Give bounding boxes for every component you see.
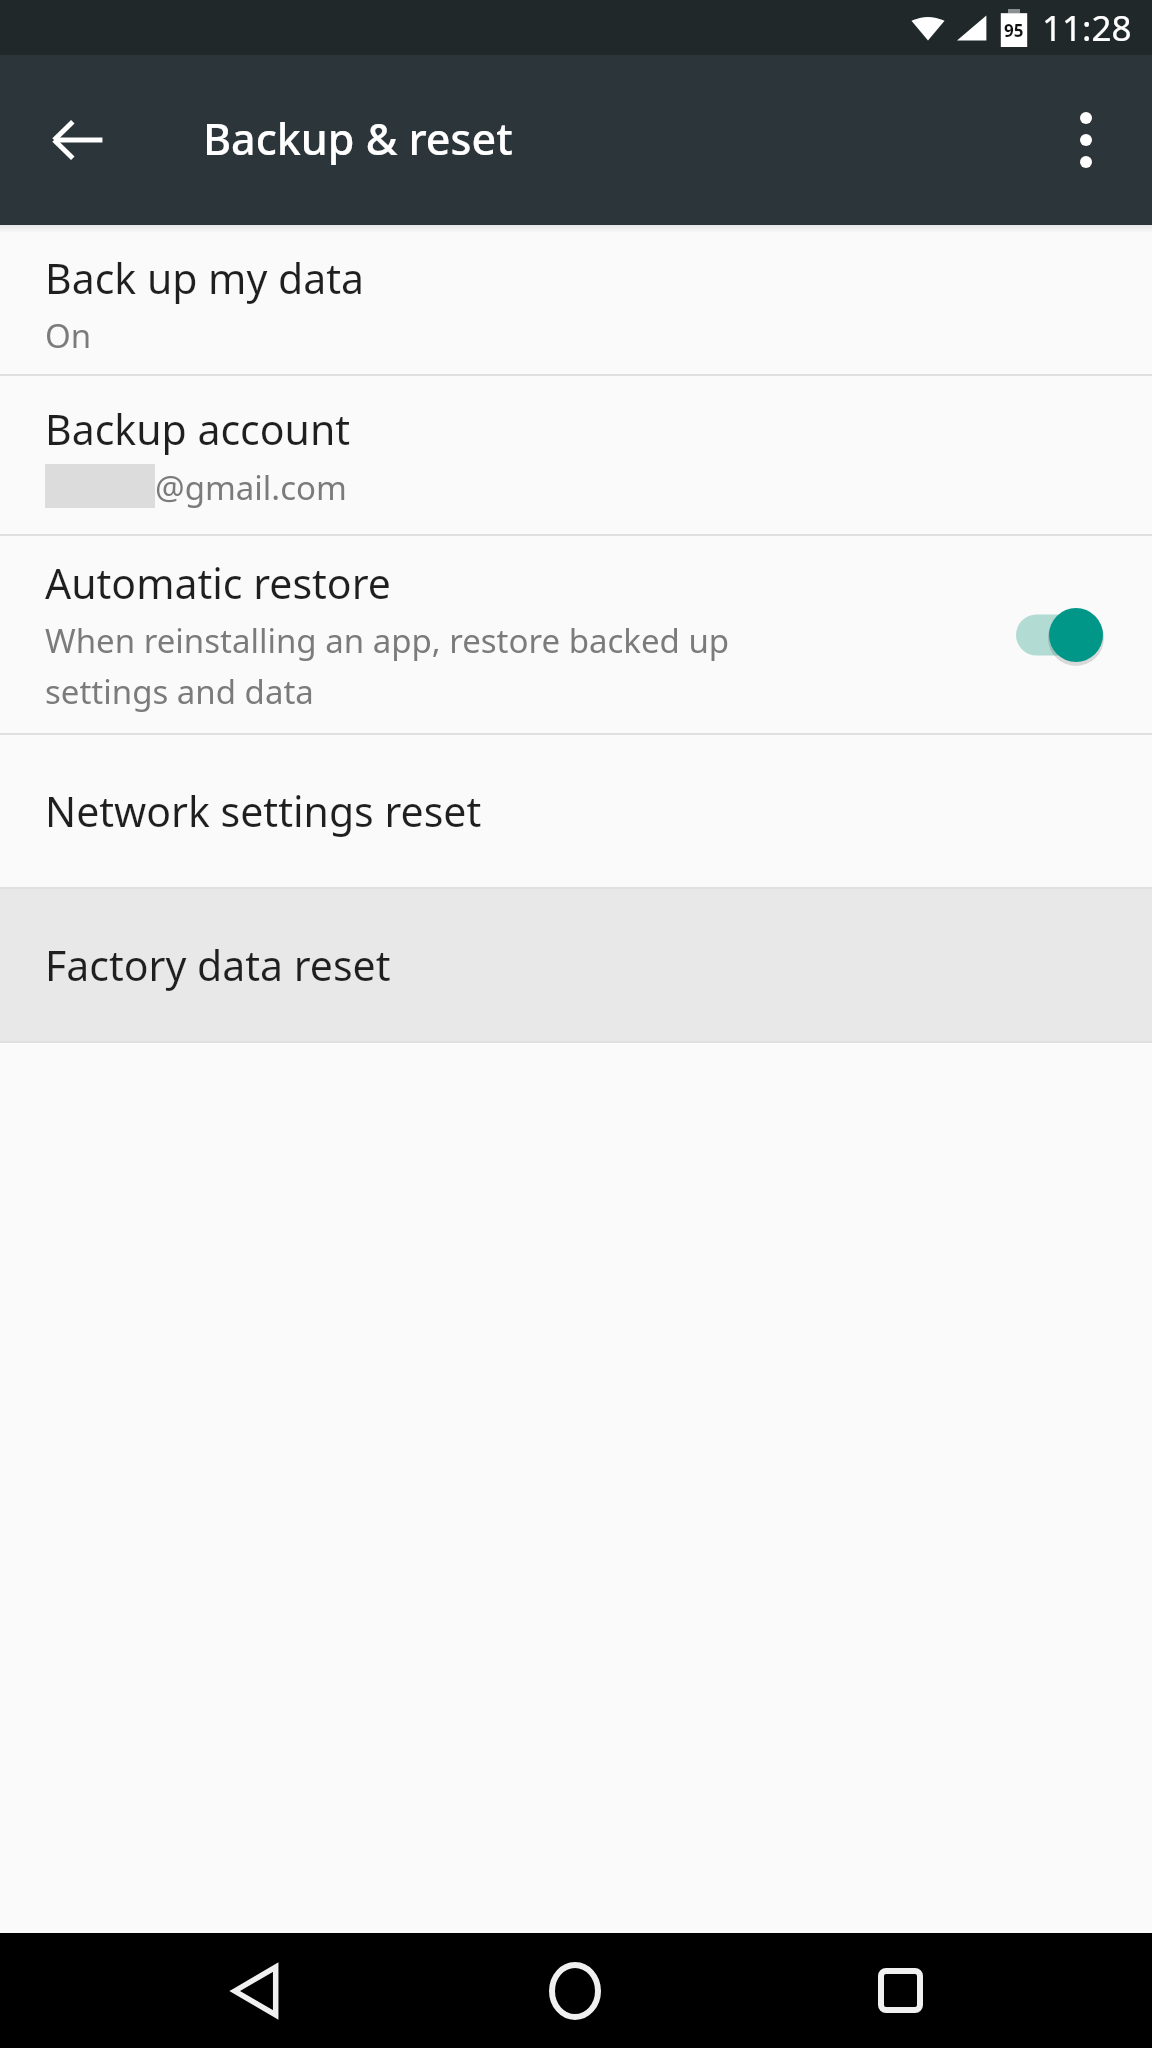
staticText: When reinstalling an app, restore backed… [45,618,730,663]
button[interactable]: Recent apps [835,1933,965,2048]
button[interactable]: Backup account [0,376,1152,534]
staticText: Backup account [45,401,351,457]
button[interactable]: Home [510,1933,640,2048]
staticText: Automatic restore [45,555,391,611]
button[interactable]: Automatic restore toggle [1002,590,1122,680]
staticText: Network settings reset [45,783,482,839]
staticText: Factory data reset [45,937,391,993]
staticText: 95 [1004,19,1024,42]
staticText: On [45,313,92,358]
button[interactable]: Automatic restore [0,536,1152,733]
button[interactable]: Network settings reset [0,735,1152,887]
button[interactable]: Back [190,1933,320,2048]
button[interactable]: Back up my data [0,233,1152,374]
staticText: @gmail.com [155,465,347,510]
staticText: Back up my data [45,250,365,306]
button[interactable]: Factory data reset [0,889,1152,1041]
staticText: settings and data [45,669,314,714]
staticText: Backup & reset [203,109,513,168]
staticText: 11:28 [1042,4,1132,52]
button[interactable]: Navigate up [28,90,128,190]
button[interactable]: More options [1036,90,1136,190]
